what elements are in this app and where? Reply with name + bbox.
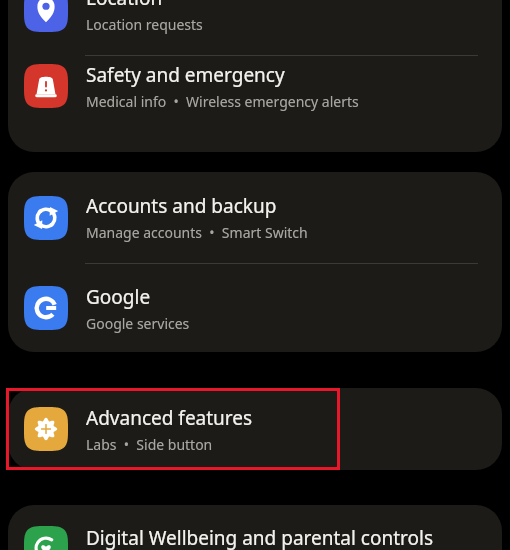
button[interactable]: Location [8, 0, 502, 55]
other: Safety and emergency [24, 64, 68, 108]
staticText: Advanced features [86, 405, 253, 431]
button[interactable]: Accounts and backup [8, 172, 502, 263]
staticText: Location [86, 0, 163, 11]
other: Google [24, 286, 68, 330]
staticText: Location requests [86, 15, 203, 34]
staticText: Manage accounts • Smart Switch [86, 223, 308, 242]
staticText: Google [86, 284, 151, 310]
staticText: Digital Wellbeing and parental controls [86, 525, 434, 550]
staticText: Labs • Side button [86, 435, 213, 454]
staticText: Medical info • Wireless emergency alerts [86, 92, 359, 111]
other: Digital Wellbeing and parental controls [24, 526, 68, 550]
staticText: Google services [86, 314, 190, 333]
button[interactable]: Google [8, 264, 502, 352]
button[interactable]: Safety and emergency [8, 56, 502, 116]
other: Accounts and backup [24, 196, 68, 240]
button[interactable]: Digital Wellbeing and parental controls [8, 525, 502, 550]
other: Location [24, 0, 68, 32]
button[interactable]: Advanced features [8, 388, 502, 470]
staticText: Safety and emergency [86, 62, 285, 88]
staticText: Accounts and backup [86, 193, 277, 219]
other: Advanced features [24, 407, 68, 451]
